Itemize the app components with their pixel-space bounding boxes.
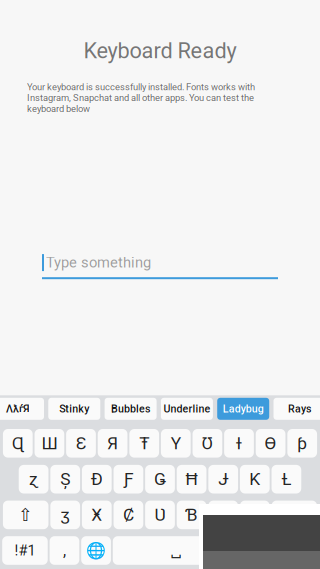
button[interactable]: Q: [3, 429, 33, 458]
button[interactable]: J: [208, 465, 238, 493]
button[interactable]: S: [50, 465, 80, 493]
staticText: Ƞ: [218, 505, 229, 525]
button[interactable]: M: [240, 501, 270, 529]
button[interactable]: Shift: [3, 501, 48, 529]
button[interactable]: ɅƛѓЯ: [0, 398, 44, 420]
staticText: !#1: [14, 542, 35, 559]
button[interactable]: F: [114, 465, 143, 493]
staticText: Ɨ: [236, 433, 242, 453]
staticText: Ӿ: [91, 505, 102, 525]
button[interactable]: O: [256, 429, 285, 458]
button[interactable]: Change language: [81, 536, 111, 565]
button[interactable]: Backspace: [271, 501, 317, 529]
staticText: Ш: [41, 433, 57, 453]
staticText: Keyboard Ready: [83, 38, 236, 63]
button[interactable]: Space: [113, 536, 239, 565]
button[interactable]: A: [19, 465, 48, 493]
button[interactable]: P: [287, 429, 317, 458]
staticText: Ƙ: [249, 469, 260, 489]
staticText: Type something: [46, 254, 151, 271]
button[interactable]: .: [241, 536, 270, 565]
staticText: Ȼ: [123, 505, 134, 525]
button[interactable]: K: [240, 465, 270, 493]
staticText: ,: [63, 541, 66, 560]
staticText: Ƒ: [123, 469, 133, 489]
staticText: ɀ: [29, 469, 38, 489]
staticText: ɅƛѓЯ: [6, 402, 30, 415]
staticText: Ү: [171, 433, 181, 453]
button[interactable]: !#1: [2, 536, 48, 565]
button[interactable]: Return: [272, 536, 318, 565]
button[interactable]: Z: [50, 501, 80, 529]
button[interactable]: G: [145, 465, 175, 493]
staticText: Ħ: [186, 469, 198, 489]
staticText: Your keyboard is successfully installed.…: [27, 81, 255, 114]
button[interactable]: C: [114, 501, 143, 529]
button[interactable]: B: [177, 501, 206, 529]
staticText: ʒ: [60, 505, 70, 525]
staticText: Underline: [163, 402, 210, 415]
button[interactable]: H: [177, 465, 206, 493]
staticText: Ʋ: [154, 505, 165, 525]
staticText: Ɛ: [76, 433, 86, 453]
staticText: Ʊ: [201, 433, 213, 453]
button[interactable]: W: [35, 429, 64, 458]
staticText: 🌐: [86, 541, 106, 560]
button[interactable]: X: [82, 501, 112, 529]
staticText: ⇧: [18, 505, 33, 525]
button[interactable]: I: [224, 429, 254, 458]
staticText: Ɉ: [218, 469, 228, 489]
staticText: ⌫: [283, 506, 306, 524]
staticText: Stinky: [59, 402, 89, 415]
button[interactable]: E: [66, 429, 96, 458]
button[interactable]: V: [145, 501, 175, 529]
button[interactable]: R: [98, 429, 127, 458]
button[interactable]: Ladybug: [217, 398, 269, 420]
button[interactable]: Rays: [273, 398, 320, 420]
staticText: Ș: [60, 469, 70, 489]
button[interactable]: U: [193, 429, 222, 458]
button[interactable]: T: [129, 429, 159, 458]
staticText: ␣: [171, 541, 181, 560]
button[interactable]: Underline: [161, 398, 213, 420]
staticText: Ɖ: [91, 469, 103, 489]
button[interactable]: ,: [50, 536, 79, 565]
staticText: Rays: [288, 402, 311, 415]
staticText: Я: [107, 433, 118, 453]
button[interactable]: Stinky: [48, 398, 100, 420]
staticText: Ɓ: [185, 505, 198, 525]
staticText: .: [253, 541, 257, 560]
button[interactable]: Bubbles: [105, 398, 157, 420]
staticText: Ӎ: [247, 505, 263, 525]
staticText: Ǥ: [154, 469, 166, 489]
staticText: Ŧ: [139, 433, 149, 453]
staticText: Ѳ: [265, 433, 277, 453]
staticText: Ladybug: [223, 402, 264, 415]
button[interactable]: Y: [161, 429, 191, 458]
button[interactable]: D: [82, 465, 112, 493]
staticText: ↵: [288, 540, 303, 561]
staticText: Ƚ: [281, 469, 291, 489]
button[interactable]: L: [272, 465, 301, 493]
staticText: Bubbles: [111, 402, 150, 415]
staticText: Ɋ: [12, 433, 24, 453]
button[interactable]: N: [208, 501, 238, 529]
staticText: ƥ: [297, 433, 307, 453]
